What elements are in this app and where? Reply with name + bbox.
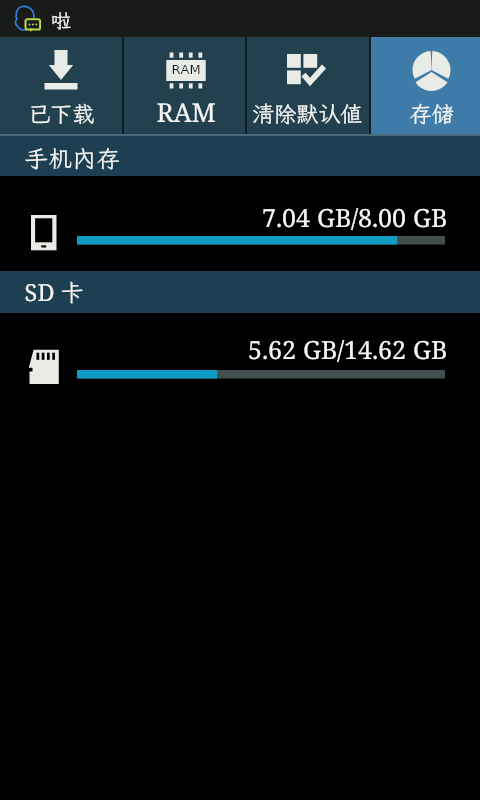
button[interactable]: RAM bbox=[124, 37, 245, 134]
button[interactable]: Downloaded bbox=[0, 37, 122, 134]
button[interactable]: Clear defaults bbox=[247, 37, 369, 134]
button[interactable] bbox=[0, 136, 480, 176]
button[interactable]: 7.04 GB/8.00 GB bbox=[0, 176, 480, 271]
button[interactable]: Storage bbox=[371, 37, 480, 134]
button[interactable]: 5.62 GB/14.62 GB bbox=[0, 313, 480, 408]
button[interactable] bbox=[0, 271, 480, 313]
